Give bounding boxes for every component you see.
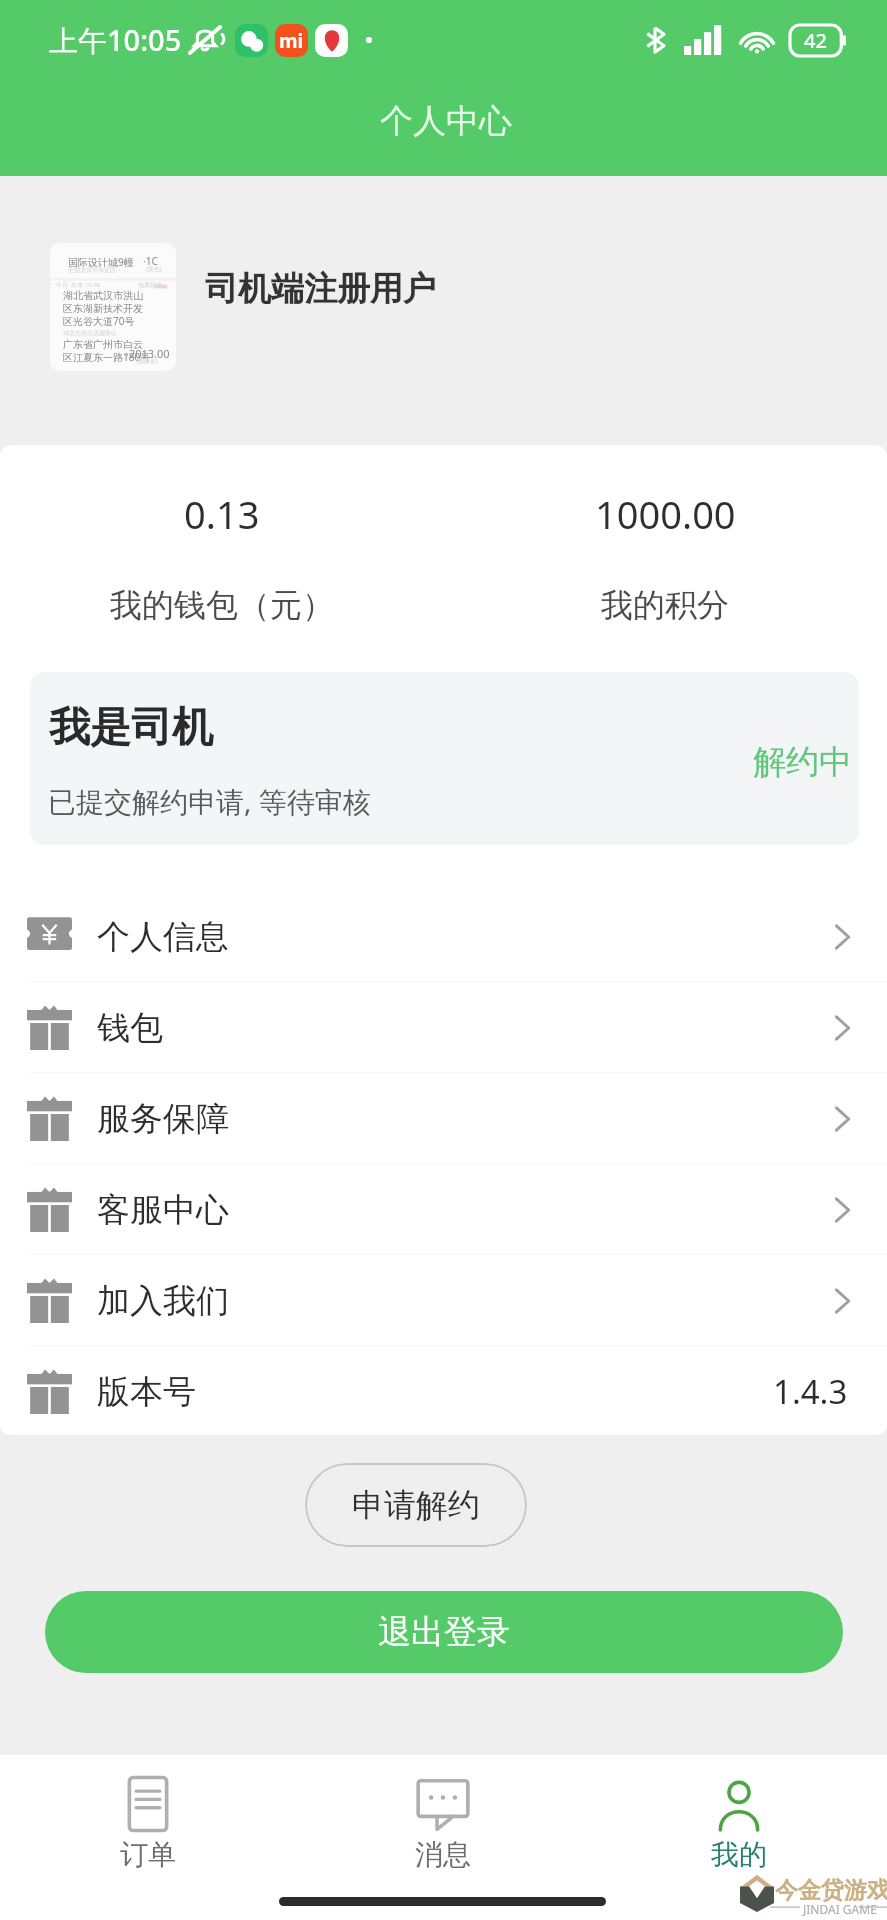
- staticText: 我的积分: [601, 585, 729, 625]
- button[interactable]: 钱包: [0, 982, 887, 1073]
- staticText: 加入我们: [97, 1280, 229, 1322]
- staticText: ·1C: [143, 254, 158, 268]
- button[interactable]: 服务保障: [0, 1073, 887, 1164]
- button[interactable]: 我是司机: [30, 672, 859, 845]
- staticText: 我的: [711, 1837, 767, 1872]
- staticText: 版本号: [97, 1371, 196, 1413]
- staticText: 湖北省武汉市洪山 区东湖新技术开发 区光谷大道70号: [63, 289, 143, 328]
- staticText: mi: [279, 28, 304, 54]
- staticText: 服务保障: [97, 1098, 229, 1140]
- staticText: 全国北京市海淀区: [68, 266, 116, 274]
- button[interactable]: 0.13: [0, 488, 443, 625]
- button[interactable]: 1000.00: [443, 488, 887, 625]
- staticText: 个人中心: [380, 100, 512, 142]
- button[interactable]: 订单: [98, 1777, 198, 1897]
- button[interactable]: 个人信息: [0, 891, 887, 982]
- staticText: 国际设计城9幢: [68, 255, 134, 269]
- button[interactable]: 版本号: [0, 1346, 887, 1435]
- staticText: ·2013.00: [126, 346, 170, 361]
- staticText: 消息: [415, 1837, 471, 1872]
- button[interactable]: Avatar: [50, 243, 176, 371]
- button[interactable]: 我的: [689, 1777, 789, 1897]
- button[interactable]: 退出登录: [45, 1591, 843, 1673]
- staticText: 退出登录: [378, 1611, 510, 1653]
- staticText: JINDAI GAME: [803, 1901, 877, 1917]
- button[interactable]: 加入我们: [0, 1255, 887, 1346]
- staticText: 42: [804, 27, 827, 54]
- staticText: 订单: [120, 1837, 176, 1872]
- staticText: 我的钱包（元）: [110, 585, 334, 625]
- staticText: 司机端注册用户: [205, 268, 436, 310]
- staticText: 已提交解约申请, 等待审核: [48, 782, 371, 820]
- staticText: 我是司机: [49, 702, 213, 754]
- staticText: 钱包: [97, 1007, 163, 1049]
- staticText: (预留金): [136, 357, 158, 365]
- staticText: 解约中: [753, 741, 852, 783]
- staticText: 1.4.3: [773, 1369, 848, 1414]
- staticText: 客服中心: [97, 1189, 229, 1231]
- staticText: 0.13: [184, 488, 260, 540]
- staticText: 广东省广州市白云 区江夏东一路180号: [63, 338, 151, 364]
- staticText: 申请解约: [352, 1485, 480, 1525]
- staticText: 包裹快递: [138, 281, 162, 289]
- staticText: 今金贷游戏: [775, 1876, 887, 1905]
- button[interactable]: 消息: [393, 1777, 493, 1897]
- staticText: 上午10:05: [49, 20, 182, 60]
- staticText: 今日 未来 14:38: [56, 281, 101, 289]
- button[interactable]: 申请解约: [305, 1463, 527, 1547]
- button[interactable]: 客服中心: [0, 1164, 887, 1255]
- staticText: (黄色): [146, 265, 162, 273]
- staticText: 湖北光谷生活服务Q: [63, 329, 116, 337]
- staticText: 个人信息: [97, 916, 229, 958]
- staticText: 1000.00: [595, 488, 736, 540]
